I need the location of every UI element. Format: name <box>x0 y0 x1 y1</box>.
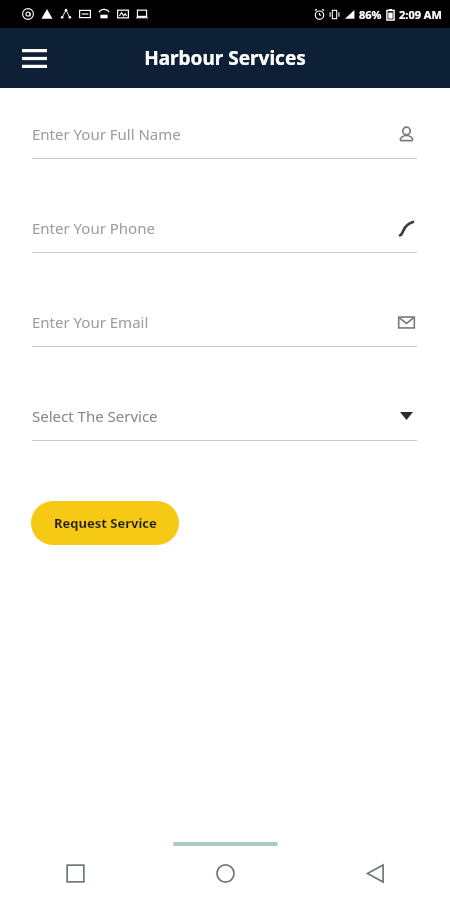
staticText: Enter Your Phone <box>32 218 155 238</box>
button[interactable]: Enter Your Phone <box>0 204 450 298</box>
staticText: Request Service <box>54 514 157 532</box>
button[interactable]: Recent apps <box>0 846 150 900</box>
button[interactable]: Open navigation menu <box>12 36 56 80</box>
staticText: 2:09 AM <box>399 7 442 22</box>
staticText: Select The Service <box>32 406 158 426</box>
button[interactable]: Home <box>150 846 300 900</box>
other: Email <box>394 310 418 334</box>
other: Phone <box>394 216 418 240</box>
other: Full name <box>394 122 418 146</box>
button[interactable]: Request Service <box>31 501 179 545</box>
staticText: 86% <box>359 7 382 22</box>
staticText: Enter Your Email <box>32 312 149 332</box>
button[interactable]: Select The Service <box>0 392 450 486</box>
staticText: Harbour Services <box>144 45 306 71</box>
button[interactable]: Enter Your Full Name <box>0 110 450 204</box>
button[interactable]: Enter Your Email <box>0 298 450 392</box>
button[interactable]: Back <box>300 846 450 900</box>
other: Select the service <box>394 404 418 428</box>
staticText: Enter Your Full Name <box>32 124 181 144</box>
